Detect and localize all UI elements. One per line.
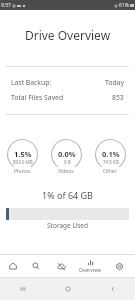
button[interactable]: Backup xyxy=(46,255,76,277)
staticText: Last Backup: xyxy=(11,78,52,87)
staticText: Videos xyxy=(58,168,74,175)
staticText: 9:57 xyxy=(1,2,11,9)
button[interactable]: Settings xyxy=(104,255,135,277)
staticText: Drive Overview xyxy=(0,27,135,43)
staticText: 0 B xyxy=(64,159,71,165)
staticText: 0.1% xyxy=(102,149,120,159)
staticText: Photos xyxy=(14,168,31,175)
staticText: 0.0% xyxy=(58,149,76,159)
staticText: Other xyxy=(103,168,117,175)
staticText: 1.5% xyxy=(14,149,32,159)
button[interactable]: Home xyxy=(0,255,26,277)
button[interactable]: Search xyxy=(26,255,46,277)
staticText: Today xyxy=(105,78,124,87)
staticText: 893.6 MB xyxy=(13,159,33,165)
staticText: 61% xyxy=(119,2,129,9)
staticText: Storage Used xyxy=(0,221,135,230)
staticText: 74.5 KB xyxy=(103,159,119,165)
button[interactable]: Recents xyxy=(0,278,45,300)
button[interactable]: Back xyxy=(90,278,135,300)
staticText: Overview xyxy=(79,267,101,274)
button[interactable]: Overview xyxy=(76,255,104,277)
staticText: Total Files Saved xyxy=(11,93,64,102)
staticText: 853 xyxy=(112,93,124,102)
button[interactable]: Home xyxy=(45,278,90,300)
staticText: 1% of 64 GB xyxy=(0,189,135,201)
